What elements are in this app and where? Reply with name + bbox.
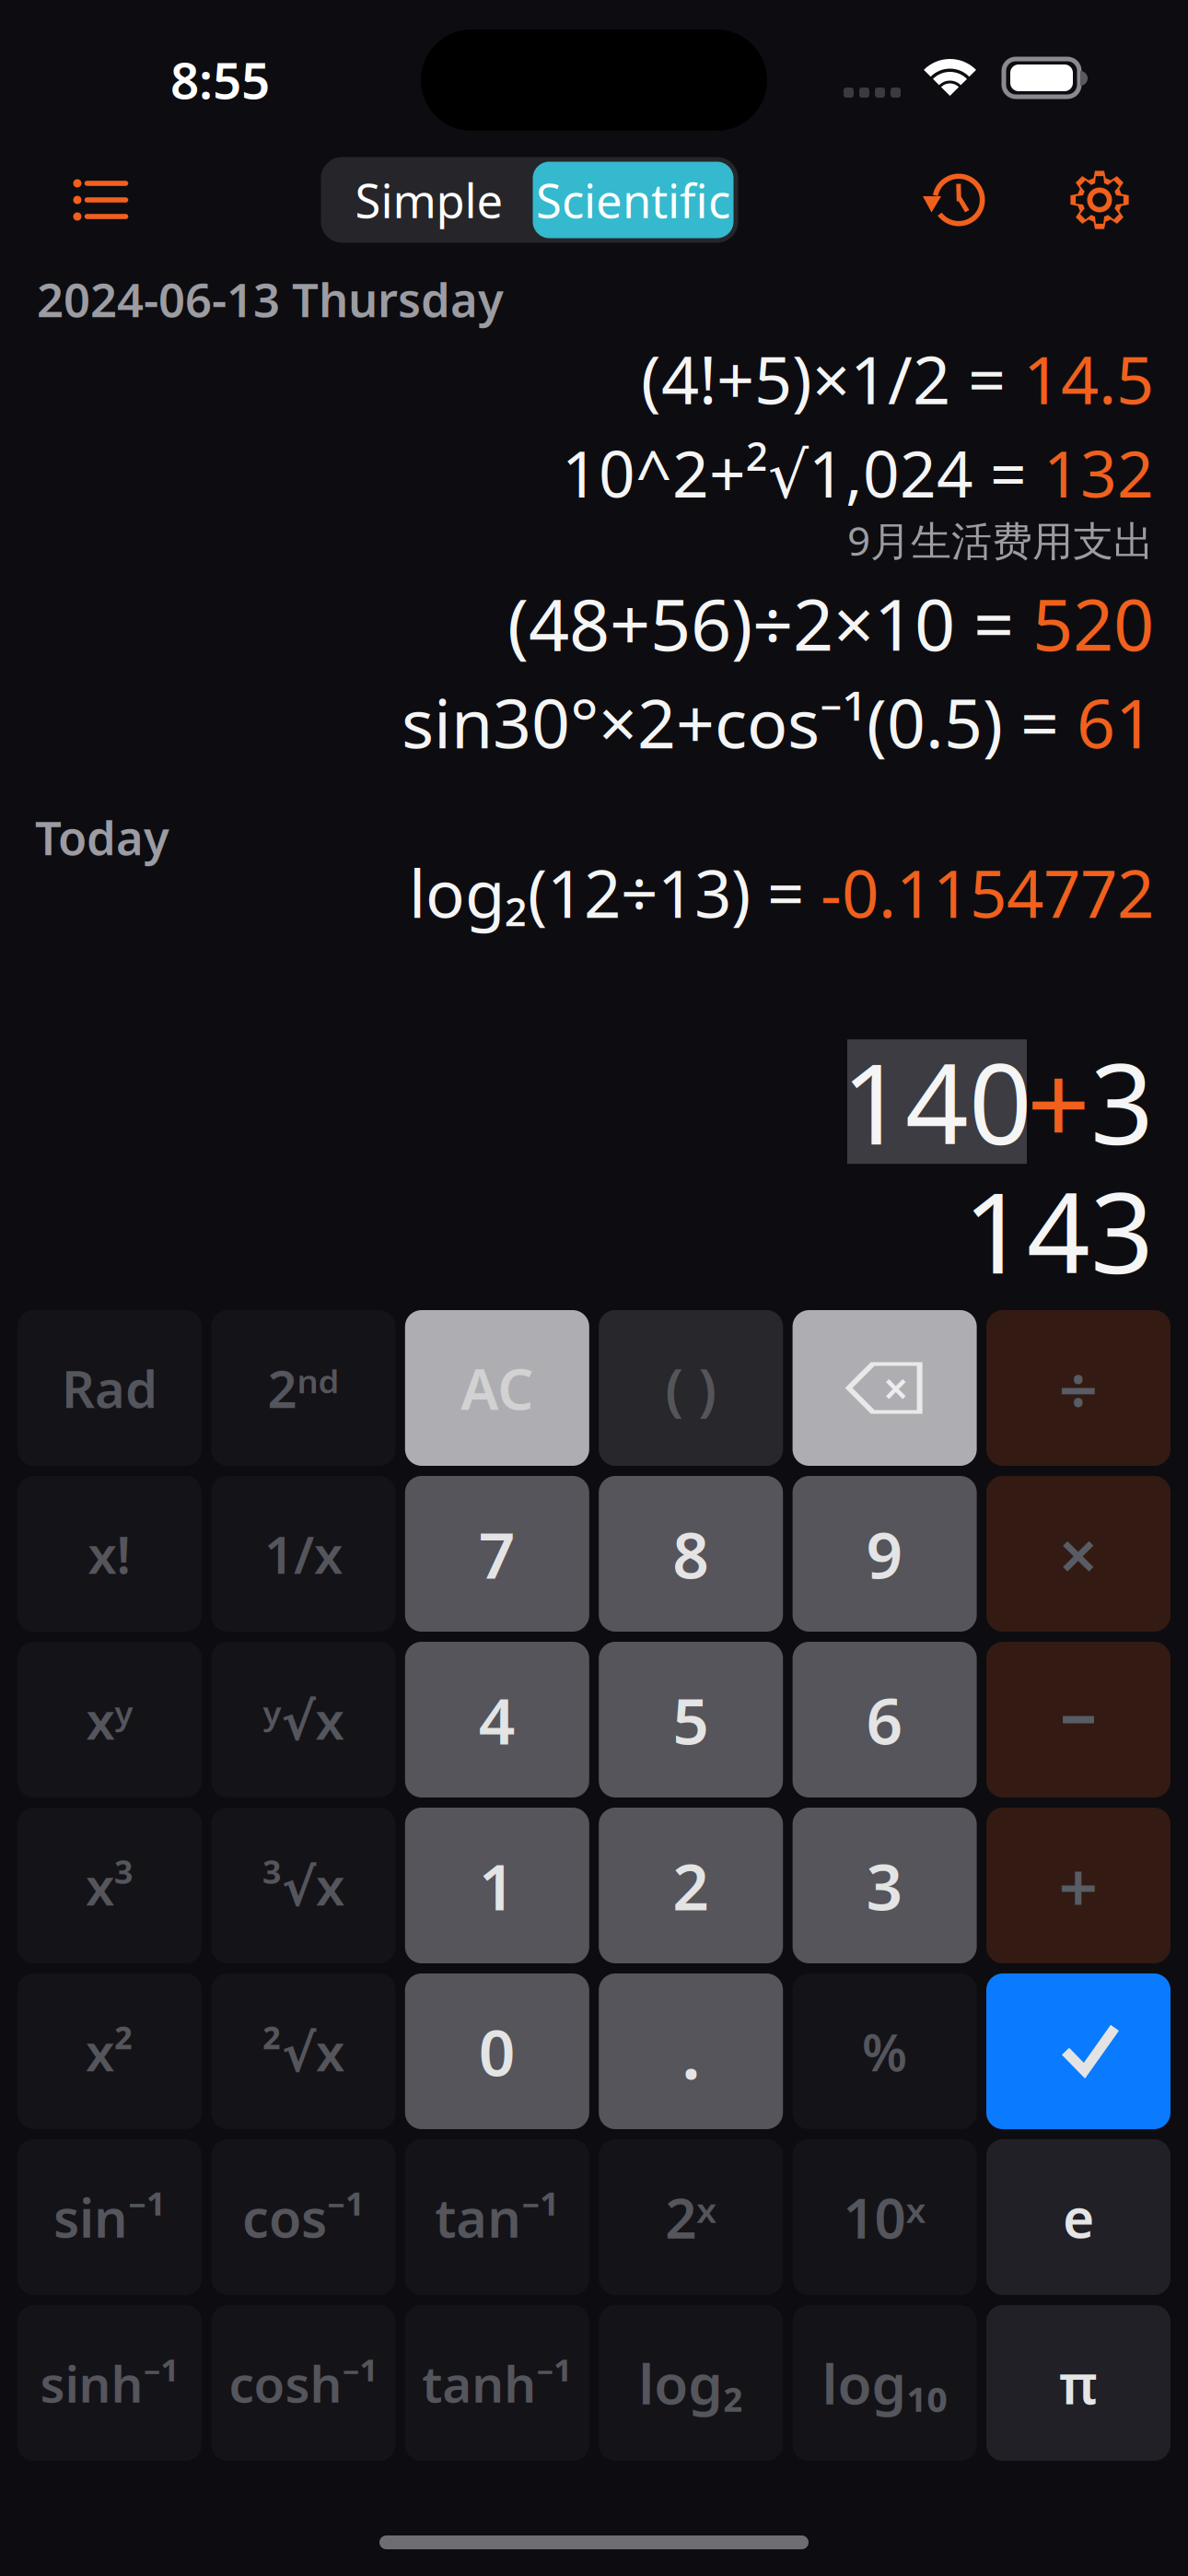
- staticText: 132: [1043, 430, 1154, 515]
- staticText: 14.5: [1023, 334, 1154, 423]
- staticText: 10ˣ: [843, 2180, 926, 2254]
- staticText: 3: [1090, 1028, 1154, 1175]
- button[interactable]: tan⁻¹: [405, 2139, 589, 2295]
- staticText: Today: [35, 806, 169, 868]
- staticText: %: [862, 2017, 907, 2086]
- staticText: cosh⁻¹: [229, 2350, 378, 2416]
- button[interactable]: %: [793, 1973, 977, 2129]
- staticText: 2024-06-13 Thursday: [37, 268, 504, 330]
- staticText: +: [1059, 1840, 1098, 1931]
- button[interactable]: sinh⁻¹: [17, 2305, 202, 2461]
- staticText: Scientific: [536, 169, 730, 231]
- button[interactable]: 2: [599, 1808, 783, 1963]
- staticText: 1: [479, 1843, 516, 1928]
- staticText: 8: [672, 1511, 709, 1596]
- button[interactable]: 7: [405, 1476, 589, 1632]
- staticText: cos⁻¹: [242, 2182, 365, 2252]
- staticText: 520: [1032, 576, 1154, 670]
- button[interactable]: 8: [599, 1476, 783, 1632]
- staticText: log₂(12÷13) =: [409, 849, 821, 936]
- staticText: x!: [88, 1520, 131, 1588]
- button[interactable]: [986, 1642, 1171, 1797]
- button[interactable]: x³: [17, 1808, 202, 1963]
- staticText: log₁₀: [822, 2346, 947, 2420]
- button[interactable]: [986, 1973, 1171, 2129]
- button[interactable]: 6: [793, 1642, 977, 1797]
- staticText: xʸ: [86, 1685, 133, 1754]
- staticText: ÷: [1059, 1342, 1098, 1434]
- staticText: 5: [672, 1677, 709, 1762]
- staticText: tan⁻¹: [435, 2182, 559, 2252]
- button[interactable]: ( ): [599, 1310, 783, 1466]
- staticText: 9: [866, 1511, 903, 1596]
- button[interactable]: cosh⁻¹: [211, 2305, 395, 2461]
- staticText: x²: [86, 2017, 134, 2086]
- staticText: sin⁻¹: [53, 2182, 166, 2252]
- button[interactable]: log₁₀: [793, 2305, 977, 2461]
- staticText: 10^2+²√1,024 =: [562, 430, 1043, 515]
- button[interactable]: cos⁻¹: [211, 2139, 395, 2295]
- staticText: 9月生活费用支出: [847, 513, 1154, 567]
- staticText: ʸ√x: [263, 1685, 344, 1754]
- button[interactable]: +: [986, 1808, 1171, 1963]
- button[interactable]: Rad: [17, 1310, 202, 1466]
- button[interactable]: Settings: [1054, 152, 1146, 248]
- button[interactable]: π: [986, 2305, 1171, 2461]
- button[interactable]: log₂: [599, 2305, 783, 2461]
- staticText: AC: [461, 1350, 533, 1425]
- staticText: π: [1059, 2347, 1098, 2419]
- staticText: ×: [883, 1359, 908, 1417]
- staticText: ( ): [665, 1350, 717, 1425]
- staticText: 3: [866, 1843, 903, 1928]
- button[interactable]: Memos: [55, 152, 147, 248]
- button[interactable]: ÷: [986, 1310, 1171, 1466]
- button[interactable]: ×: [986, 1476, 1171, 1632]
- staticText: 2ⁿᵈ: [267, 1354, 339, 1422]
- button[interactable]: Scientific: [533, 162, 734, 238]
- button[interactable]: e: [986, 2139, 1171, 2295]
- staticText: sinh⁻¹: [40, 2350, 179, 2416]
- staticText: 4: [479, 1677, 516, 1762]
- button[interactable]: ³√x: [211, 1808, 395, 1963]
- button[interactable]: 9: [793, 1476, 977, 1632]
- staticText: tanh⁻¹: [422, 2350, 572, 2416]
- button[interactable]: ²√x: [211, 1973, 395, 2129]
- staticText: 1/x: [264, 1520, 342, 1588]
- staticText: 6: [866, 1677, 903, 1762]
- button[interactable]: 2ˣ: [599, 2139, 783, 2295]
- button[interactable]: 0: [405, 1973, 589, 2129]
- staticText: 7: [479, 1511, 516, 1596]
- staticText: 8:55: [170, 46, 270, 113]
- staticText: 140: [842, 1028, 1032, 1175]
- staticText: 2ˣ: [665, 2180, 717, 2254]
- staticText: 143: [963, 1157, 1154, 1304]
- button[interactable]: 1/x: [211, 1476, 395, 1632]
- button[interactable]: sin⁻¹: [17, 2139, 202, 2295]
- button[interactable]: xʸ: [17, 1642, 202, 1797]
- staticText: 2: [672, 1843, 709, 1928]
- button[interactable]: 5: [599, 1642, 783, 1797]
- staticText: (4!+5)×1/2 =: [641, 334, 1023, 423]
- button[interactable]: x!: [17, 1476, 202, 1632]
- button[interactable]: ʸ√x: [211, 1642, 395, 1797]
- staticText: sin30°×2+cos⁻¹(0.5) =: [402, 677, 1077, 767]
- button[interactable]: tanh⁻¹: [405, 2305, 589, 2461]
- staticText: Rad: [62, 1354, 157, 1422]
- button[interactable]: 3: [793, 1808, 977, 1963]
- button[interactable]: 10ˣ: [793, 2139, 977, 2295]
- staticText: ×: [1059, 1508, 1098, 1599]
- button[interactable]: 1: [405, 1808, 589, 1963]
- button[interactable]: .: [599, 1973, 783, 2129]
- button[interactable]: AC: [405, 1310, 589, 1466]
- staticText: (48+56)÷2×10 =: [507, 576, 1032, 670]
- button[interactable]: Simple: [326, 162, 533, 238]
- staticText: Simple: [355, 169, 503, 231]
- button[interactable]: 2ⁿᵈ: [211, 1310, 395, 1466]
- button[interactable]: History: [912, 152, 1004, 248]
- button[interactable]: ×: [793, 1310, 977, 1466]
- button[interactable]: 4: [405, 1642, 589, 1797]
- staticText: e: [1063, 2181, 1094, 2253]
- staticText: 0: [479, 2009, 516, 2094]
- staticText: x³: [86, 1851, 134, 1920]
- button[interactable]: x²: [17, 1973, 202, 2129]
